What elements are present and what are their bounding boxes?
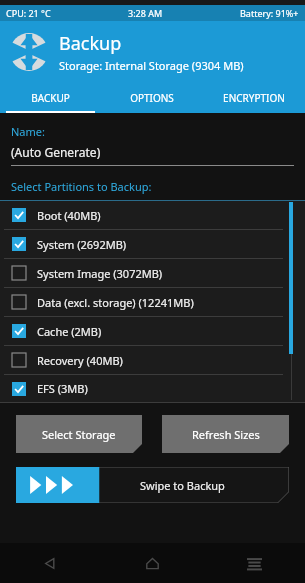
button[interactable]: OPTIONS <box>101 83 203 113</box>
button[interactable]: Cache (2MB) <box>0 317 305 345</box>
staticText: Data (excl. storage) (12241MB) <box>37 295 194 310</box>
button[interactable]: System (2692MB) <box>0 230 305 258</box>
button[interactable]: Boot (40MB) <box>0 201 305 229</box>
staticText: 3:28 AM <box>128 7 163 19</box>
staticText: System (2692MB) <box>37 237 127 252</box>
staticText: System Image (3072MB) <box>37 266 163 281</box>
button[interactable]: Data (excl. storage) (12241MB) <box>0 288 305 316</box>
button[interactable]: Refresh Sizes <box>162 415 289 453</box>
staticText: Battery: 91%+ <box>240 7 299 19</box>
staticText: ENCRYPTION <box>223 91 285 105</box>
staticText: Select Partitions to Backup: <box>11 179 152 194</box>
staticText: Refresh Sizes <box>192 427 260 442</box>
staticText: Name: <box>11 124 45 139</box>
staticText: Backup <box>59 31 122 56</box>
staticText: Storage: Internal Storage (9304 MB) <box>59 58 244 73</box>
button[interactable]: Back <box>0 543 101 583</box>
button[interactable]: Home <box>101 543 203 583</box>
staticText: Boot (40MB) <box>37 208 101 223</box>
button[interactable]: Select Storage <box>16 415 142 453</box>
staticText: EFS (3MB) <box>37 381 88 396</box>
button[interactable]: Recovery (40MB) <box>0 346 305 374</box>
staticText: Cache (2MB) <box>37 324 102 339</box>
button[interactable]: ENCRYPTION <box>203 83 305 113</box>
button[interactable]: BACKUP <box>0 83 101 113</box>
staticText: Recovery (40MB) <box>37 353 123 368</box>
staticText: CPU: 21 °C <box>6 7 51 19</box>
staticText: Select Storage <box>42 427 116 442</box>
staticText: BACKUP <box>31 91 70 105</box>
button[interactable]: Recent apps <box>203 543 305 583</box>
button[interactable]: Swipe to Backup <box>16 467 289 503</box>
staticText: (Auto Generate) <box>11 144 101 160</box>
button[interactable]: EFS (3MB) <box>0 375 305 402</box>
staticText: Swipe to Backup <box>140 478 225 493</box>
staticText: OPTIONS <box>130 91 174 105</box>
button[interactable]: System Image (3072MB) <box>0 259 305 287</box>
